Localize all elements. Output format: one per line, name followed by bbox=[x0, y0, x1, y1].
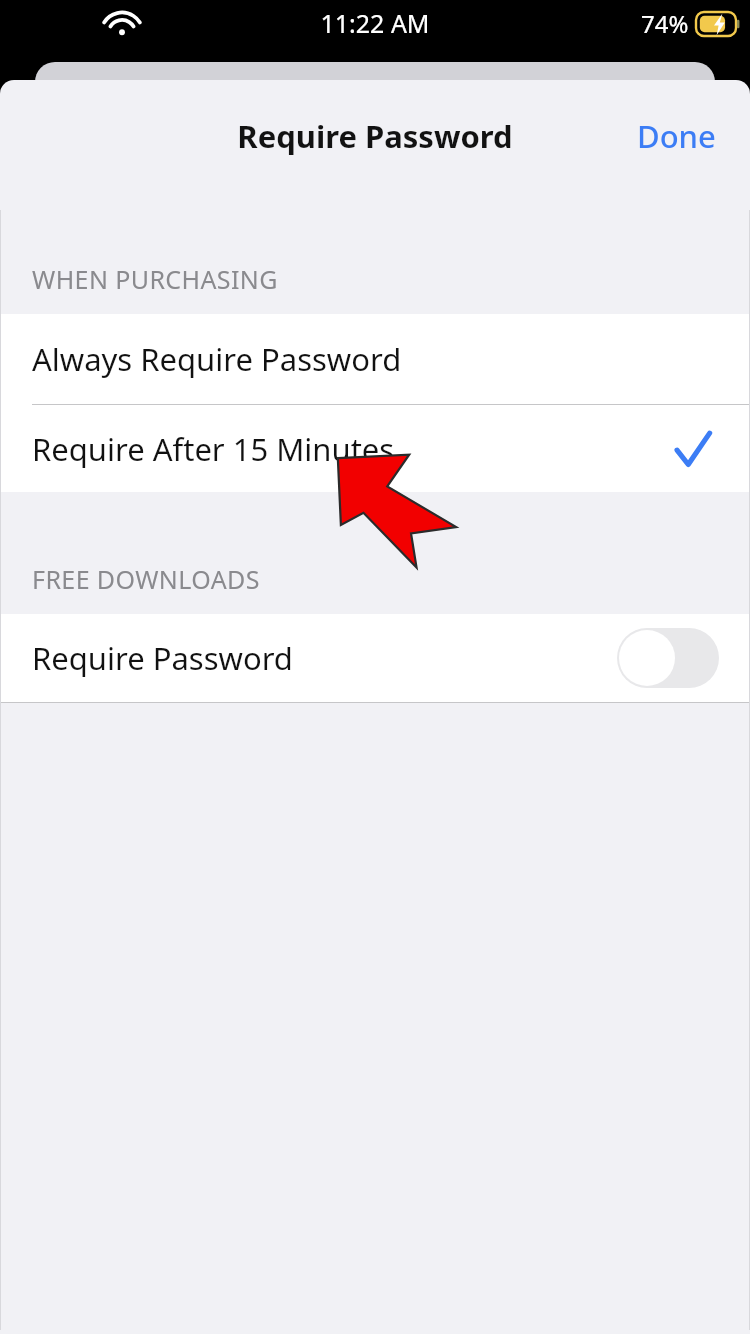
staticText: Require After 15 Minutes bbox=[32, 428, 395, 470]
staticText: FREE DOWNLOADS bbox=[32, 562, 260, 596]
staticText: Require Password bbox=[237, 115, 513, 157]
button[interactable]: Always Require Password bbox=[0, 314, 750, 404]
staticText: Require Password bbox=[32, 637, 293, 679]
other: Require Password toggle bbox=[617, 628, 719, 688]
staticText: 11:22 AM bbox=[320, 6, 430, 40]
button[interactable]: Require Password bbox=[0, 614, 750, 702]
button[interactable]: Done bbox=[603, 101, 750, 171]
staticText: Always Require Password bbox=[32, 338, 402, 380]
staticText: WHEN PURCHASING bbox=[32, 262, 278, 296]
other: Selected bbox=[676, 431, 710, 467]
staticText: 74% bbox=[641, 7, 689, 40]
button[interactable]: Require After 15 Minutes bbox=[0, 405, 750, 492]
staticText: Done bbox=[637, 115, 716, 157]
